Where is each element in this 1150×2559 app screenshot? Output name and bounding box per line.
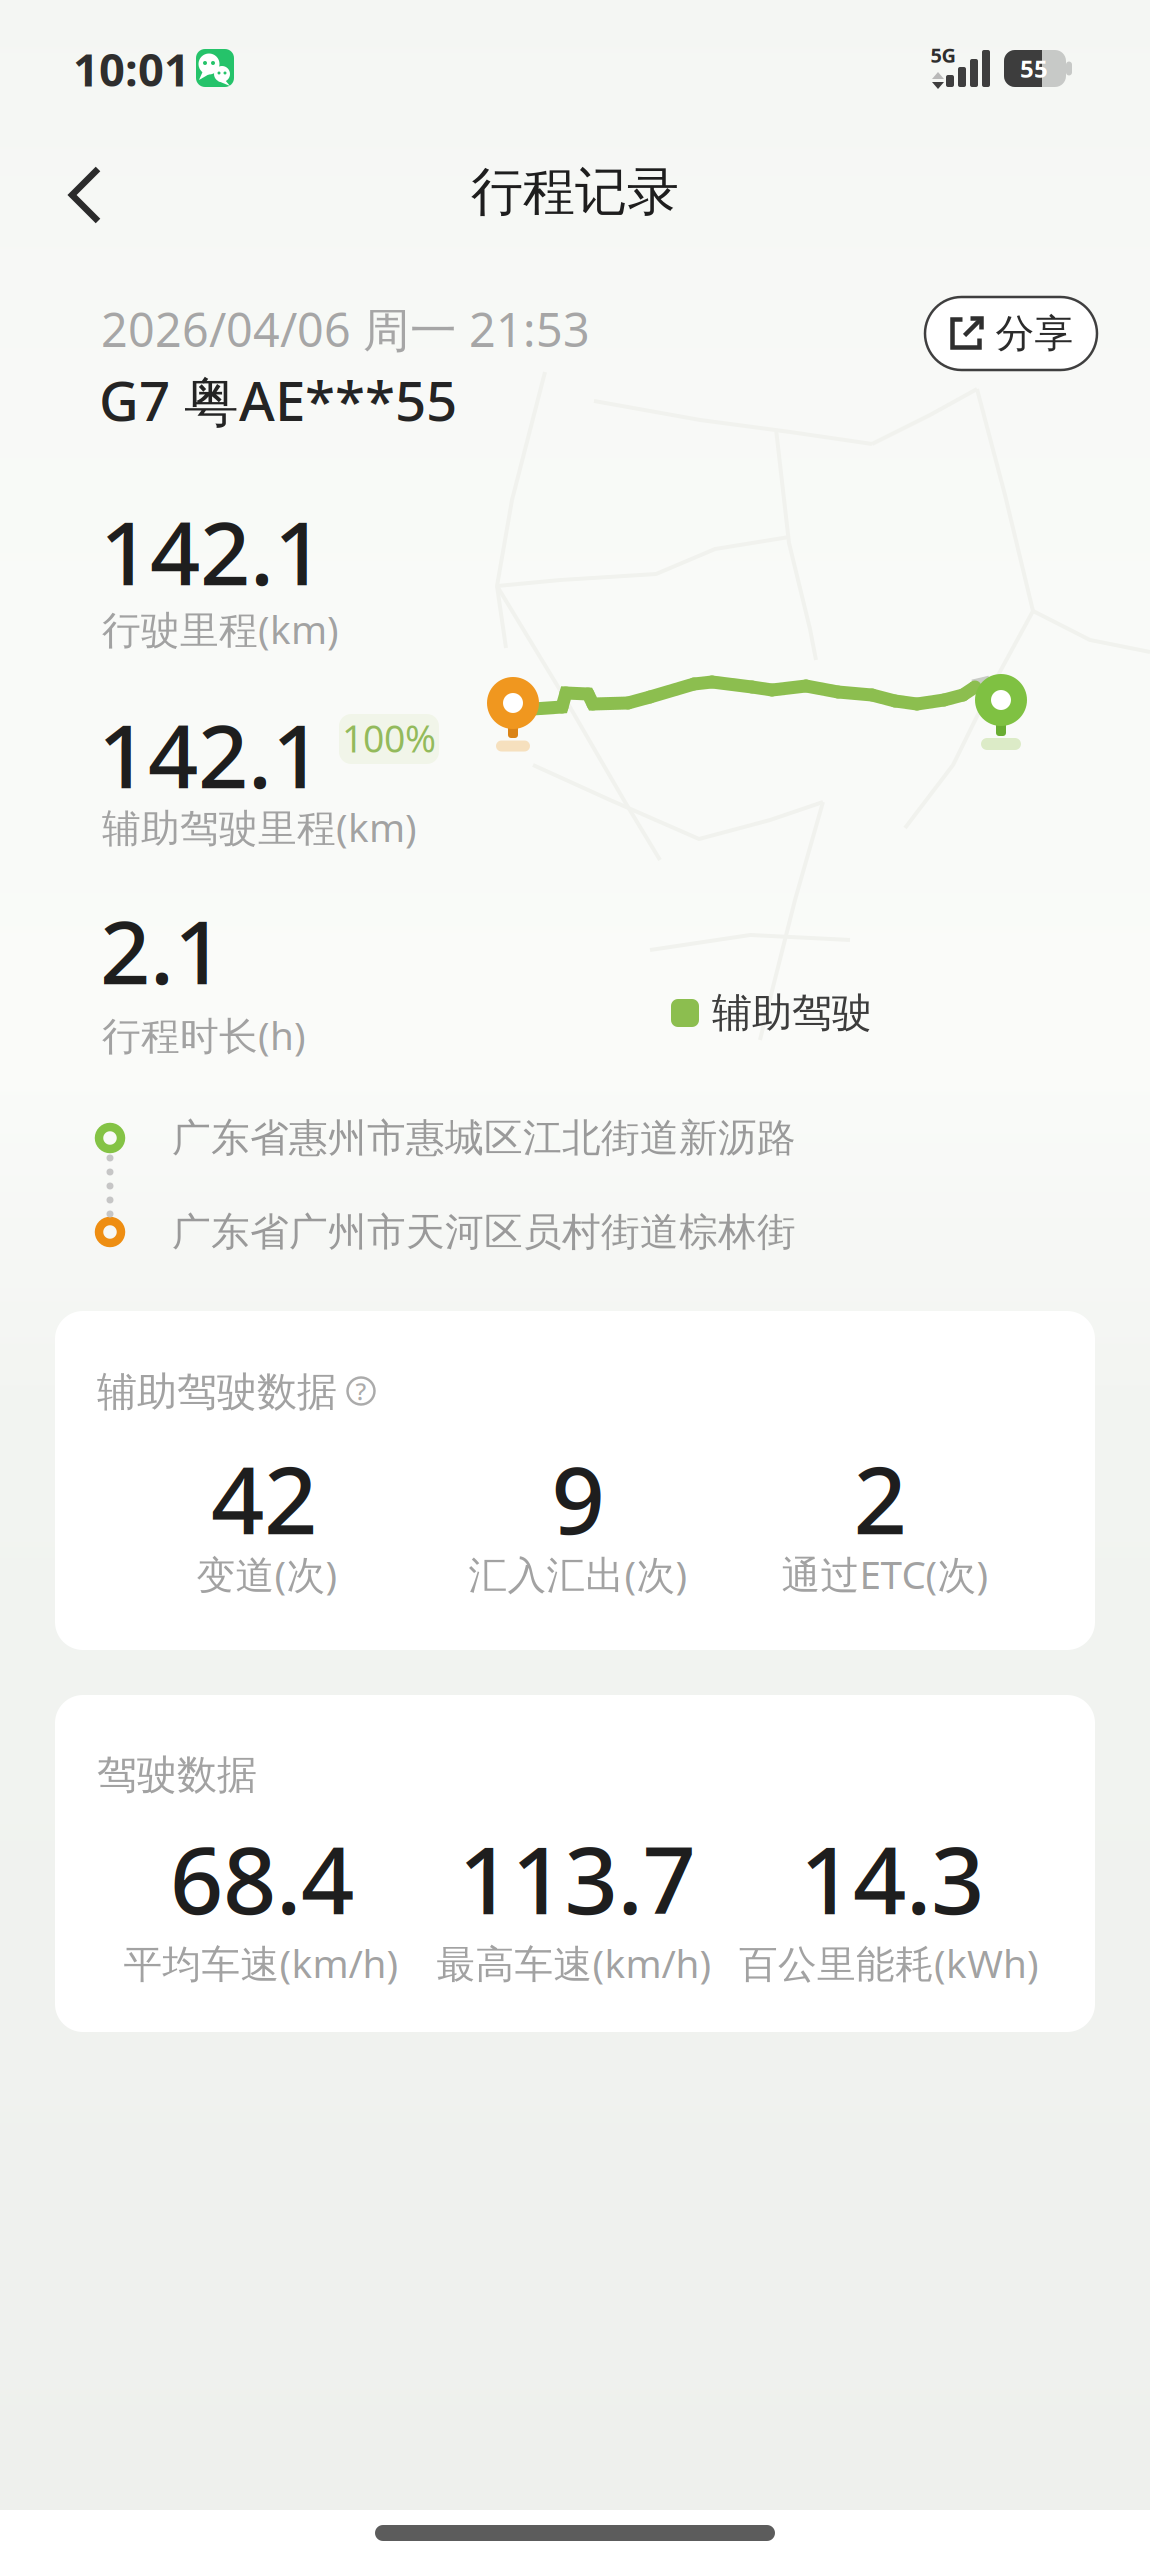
button[interactable] bbox=[54, 160, 114, 230]
staticText: 142.1 bbox=[98, 696, 322, 812]
staticText: 变道(次) bbox=[196, 1548, 337, 1600]
button[interactable]: ? bbox=[344, 1374, 378, 1408]
staticText: 汇入汇出(次) bbox=[468, 1548, 687, 1600]
staticText: 142.1 bbox=[100, 493, 324, 609]
staticText: G7 粤AE***55 bbox=[99, 364, 457, 436]
staticText: 2.1 bbox=[100, 892, 224, 1008]
staticText: 广东省广州市天河区员村街道棕林街 bbox=[172, 1208, 796, 1256]
staticText: 行程记录 bbox=[471, 160, 679, 224]
staticText: 2 bbox=[853, 1436, 906, 1560]
staticText: 行程时长(h) bbox=[102, 1009, 306, 1061]
staticText: 通过ETC(次) bbox=[781, 1548, 988, 1600]
staticText: 42 bbox=[211, 1436, 317, 1560]
button[interactable]: 分享 bbox=[925, 297, 1097, 370]
staticText: 百公里能耗(kWh) bbox=[739, 1937, 1039, 1989]
staticText: 14.3 bbox=[800, 1816, 984, 1940]
staticText: 辅助驾驶里程(km) bbox=[102, 801, 417, 853]
staticText: 分享 bbox=[995, 310, 1073, 357]
staticText: 5G bbox=[930, 42, 955, 68]
staticText: 100% bbox=[342, 713, 436, 763]
staticText: 最高车速(km/h) bbox=[436, 1937, 711, 1989]
staticText: 113.7 bbox=[458, 1816, 695, 1940]
staticText: 10:01 bbox=[73, 39, 190, 99]
staticText: 行驶里程(km) bbox=[102, 603, 339, 655]
staticText: 辅助驾驶数据 bbox=[97, 1367, 337, 1416]
staticText: ? bbox=[355, 1375, 366, 1407]
staticText: 9 bbox=[551, 1436, 604, 1560]
staticText: 广东省惠州市惠城区江北街道新沥路 bbox=[172, 1114, 796, 1162]
staticText: 平均车速(km/h) bbox=[123, 1937, 398, 1989]
staticText: 68.4 bbox=[170, 1816, 354, 1940]
staticText: 55 bbox=[1020, 53, 1048, 84]
staticText: 驾驶数据 bbox=[97, 1750, 257, 1799]
staticText: 辅助驾驶 bbox=[712, 988, 872, 1037]
staticText: 2026/04/06 周一 21:53 bbox=[101, 298, 590, 360]
